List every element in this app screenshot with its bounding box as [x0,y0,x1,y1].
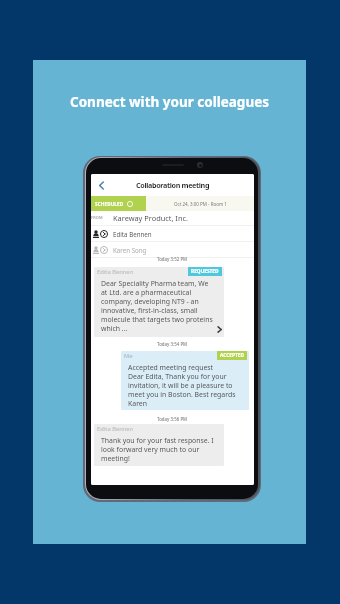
staticText: Edita Bennen [97,268,134,276]
button[interactable]: Edita Bennen [94,424,224,466]
staticText: Karen Song [113,246,147,254]
button[interactable]: Back [92,174,110,196]
staticText: Oct 24, 3:00 PM - Room 1 [174,201,227,207]
staticText: Today 3:54 PM [157,341,188,347]
staticText: Collaboration meeting [136,180,210,190]
button[interactable]: Edita Bennen [94,267,224,337]
staticText: ACCEPTED [220,352,244,359]
button[interactable]: Me [121,351,249,410]
staticText: Kareway Product, Inc. [113,213,188,223]
staticText: Me [124,352,133,360]
staticText: Edita Bennen [97,425,134,433]
button[interactable]: Karen Song [93,242,254,257]
staticText: Thank you for your fast response. I look… [101,436,214,463]
staticText: Dear Speciality Pharma team, We at Ltd. … [101,279,213,333]
staticText: Accepted meeting request Dear Edita, Tha… [128,363,236,408]
staticText: FROM [91,215,103,220]
button[interactable]: Edita Bennen [93,226,254,241]
staticText: REQUESTED [191,268,219,275]
staticText: Edita Bennen [113,230,152,238]
staticText: Connect with your colleagues [70,93,269,111]
staticText: Today 3:52 PM [157,256,188,262]
staticText: Today 3:56 PM [157,416,188,422]
staticText: SCHEDULED [95,201,124,207]
